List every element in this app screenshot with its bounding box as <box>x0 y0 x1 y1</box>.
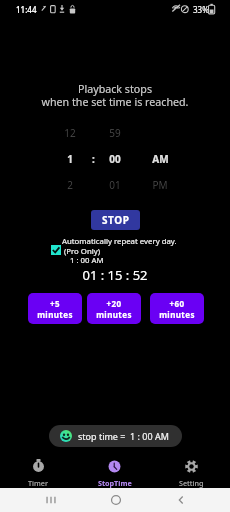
staticText: Timer <box>28 478 48 488</box>
button[interactable]: +5 minutes <box>28 293 82 324</box>
button[interactable]: stop time = 1 : 00 AM <box>49 425 182 447</box>
button[interactable]: +20 minutes <box>87 293 141 324</box>
staticText: Playback stops when the set time is reac… <box>0 82 230 109</box>
staticText: STOP <box>102 213 130 227</box>
staticText: StopTime <box>98 478 132 488</box>
staticText: PM <box>152 178 168 192</box>
staticText: +5 minutes <box>37 298 73 320</box>
button[interactable]: Home <box>93 488 138 512</box>
staticText: 1 <box>67 152 73 166</box>
staticText: 11:44 <box>16 4 37 15</box>
staticText: (Pro Only) <box>64 246 101 257</box>
staticText: Setting <box>179 478 204 488</box>
staticText: +20 minutes <box>96 298 132 320</box>
staticText: stop time = 1 : 00 AM <box>78 430 169 442</box>
button[interactable]: STOP <box>91 210 140 230</box>
button[interactable]: Timer <box>0 452 76 488</box>
staticText: 2 <box>67 178 73 192</box>
button[interactable]: +60 minutes <box>150 293 204 324</box>
button[interactable]: Setting <box>153 452 230 488</box>
staticText: AM <box>152 152 169 166</box>
staticText: +60 minutes <box>159 298 195 320</box>
button[interactable]: Automatically repeat every day <box>51 245 61 255</box>
staticText: 59 <box>109 126 121 140</box>
staticText: 00 <box>109 152 121 166</box>
staticText: 12 <box>64 126 76 140</box>
staticText: 01 <box>109 178 121 192</box>
button[interactable]: Back <box>158 488 203 512</box>
button[interactable]: StopTime <box>76 452 153 488</box>
button[interactable]: Recents <box>28 488 73 512</box>
staticText: Automatically repeat every day. <box>62 236 177 247</box>
staticText: : <box>92 152 95 166</box>
staticText: 1 : 00 AM <box>70 255 104 266</box>
staticText: 01 : 15 : 52 <box>0 266 230 284</box>
staticText: 33% <box>193 4 209 15</box>
